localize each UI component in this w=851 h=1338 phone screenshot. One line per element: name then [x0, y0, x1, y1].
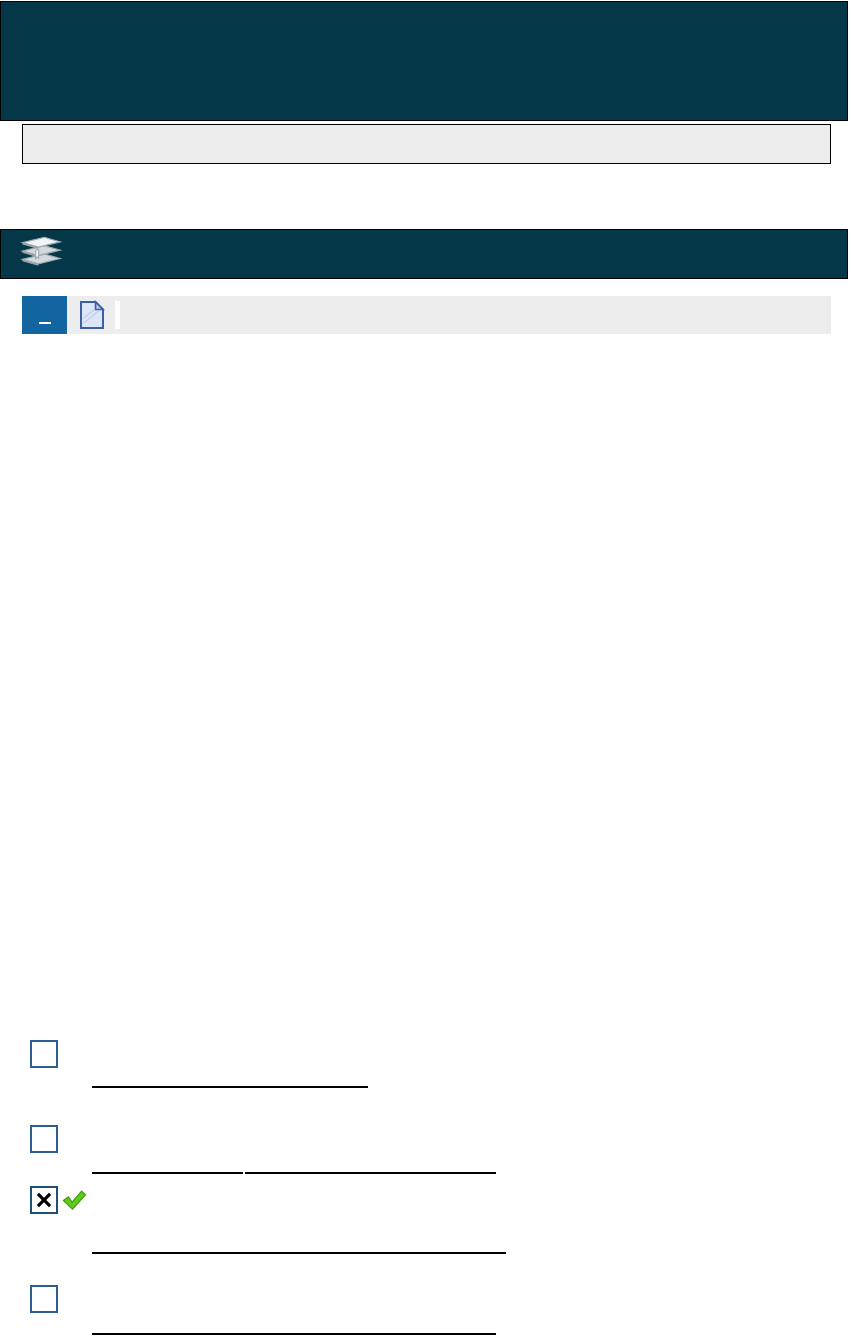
- button[interactable]: Unchecked: [30, 1125, 58, 1153]
- button[interactable]: Checked: [30, 1186, 58, 1214]
- button[interactable]: Document: [72, 296, 112, 334]
- button[interactable]: Unchecked: [30, 1040, 58, 1068]
- other: Books: [18, 235, 62, 273]
- button[interactable]: [22, 124, 831, 164]
- button[interactable]: [0, 1, 848, 121]
- button[interactable]: Books: [0, 229, 848, 279]
- button[interactable]: Approved: [62, 1189, 86, 1211]
- button[interactable]: Collapse: [22, 296, 67, 334]
- button[interactable]: Unchecked: [30, 1285, 58, 1313]
